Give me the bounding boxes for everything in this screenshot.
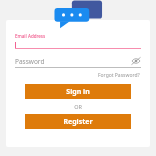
button[interactable]: Show password [131, 56, 141, 66]
button[interactable] [15, 40, 141, 49]
button[interactable]: Register [25, 114, 131, 129]
staticText: Password [15, 57, 45, 66]
staticText: Email Address [15, 33, 46, 39]
staticText: Sign in [66, 87, 90, 97]
button[interactable]: Forgot Password? [97, 71, 141, 80]
button[interactable]: Sign in [25, 84, 131, 99]
staticText: Register [63, 117, 93, 127]
staticText: Forgot Password? [98, 72, 140, 79]
button[interactable]: Password [15, 57, 141, 68]
staticText: OR [15, 103, 141, 110]
